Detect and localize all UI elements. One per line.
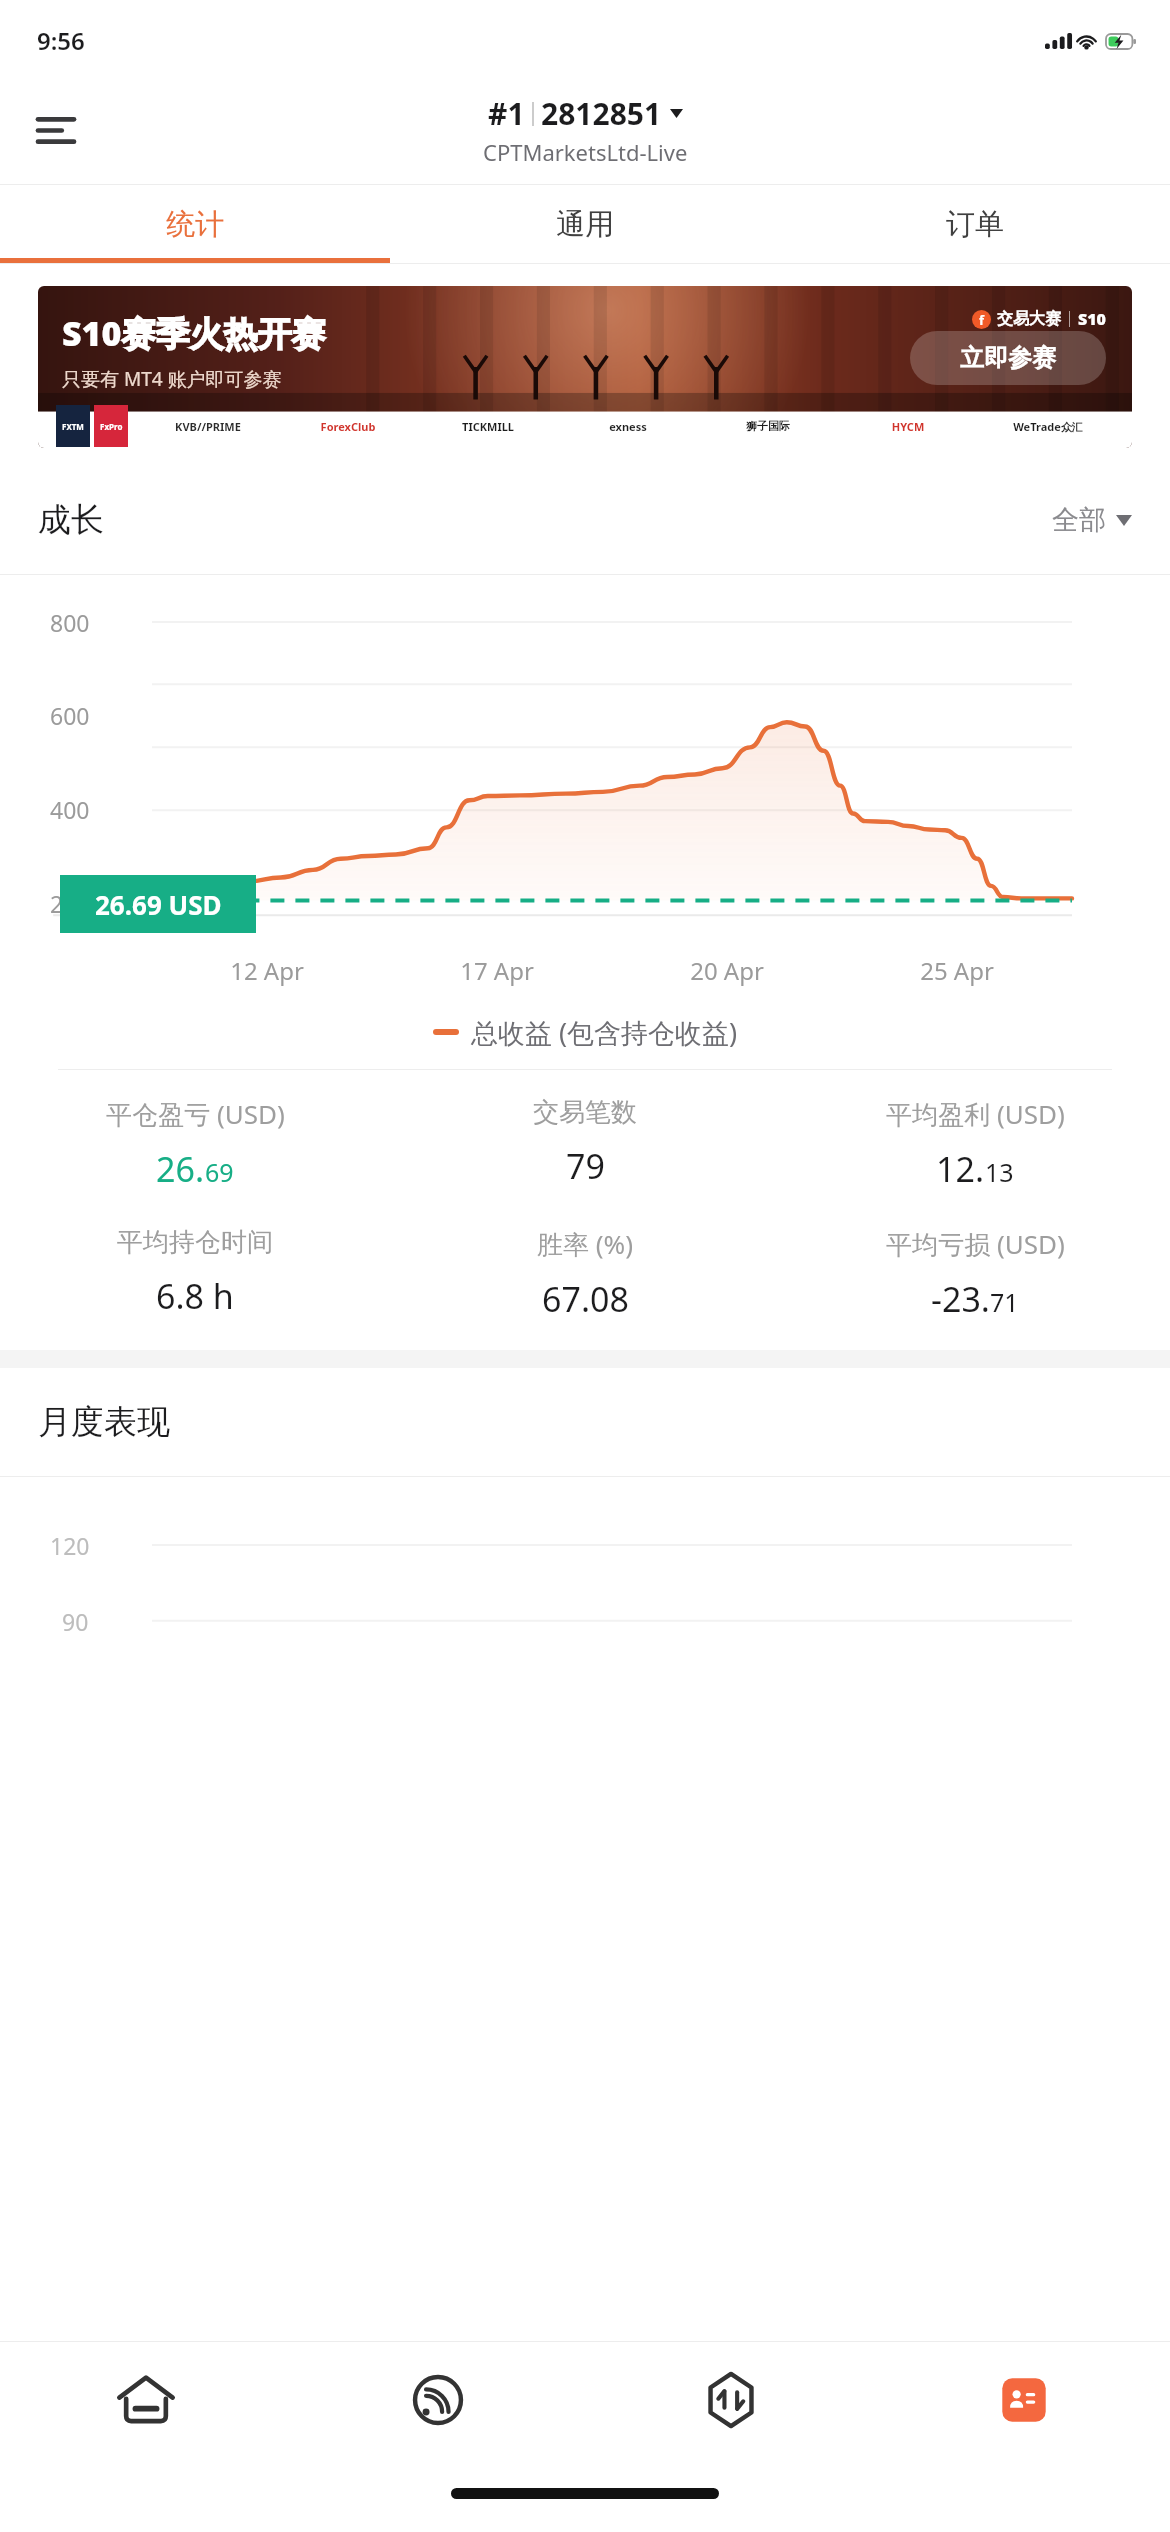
staticText: 只要有 MT4 账户即可参赛 xyxy=(62,366,282,392)
staticText: 69 xyxy=(205,1155,234,1189)
staticText: 全部 xyxy=(1052,503,1106,537)
button[interactable]: Trade xyxy=(584,2342,877,2474)
button[interactable]: 订单 xyxy=(780,185,1170,263)
staticText: 90 xyxy=(62,1606,89,1637)
staticText: 月度表现 xyxy=(38,1401,170,1443)
button[interactable]: 平均盈利 (USD) xyxy=(780,1096,1170,1192)
staticText: 13 xyxy=(985,1155,1014,1189)
staticText: 通用 xyxy=(556,206,614,243)
staticText: ForexClub xyxy=(278,419,418,434)
staticText: 71 xyxy=(990,1285,1019,1319)
staticText: 平均盈利 (USD) xyxy=(886,1096,1065,1132)
button[interactable]: S10赛季火热开赛 xyxy=(38,286,1132,448)
staticText: FxPro xyxy=(100,421,123,432)
staticText: CPTMarketsLtd-Live xyxy=(483,137,688,167)
staticText: HYCM xyxy=(838,419,978,434)
staticText: 20 Apr xyxy=(612,954,842,987)
button[interactable]: 立即参赛 xyxy=(910,331,1106,385)
staticText: 600 xyxy=(50,700,90,731)
staticText: 79 xyxy=(566,1143,605,1189)
staticText: f xyxy=(979,311,985,329)
staticText: 25 Apr xyxy=(842,954,1072,987)
staticText: 狮子国际 xyxy=(698,419,838,433)
staticText: 67.08 xyxy=(542,1276,629,1322)
staticText: 交易大赛 xyxy=(997,309,1061,329)
staticText: exness xyxy=(558,419,698,434)
staticText: 总收益 (包含持仓收益) xyxy=(471,1014,738,1051)
staticText: #1 xyxy=(488,93,525,134)
staticText: 成长 xyxy=(38,499,104,541)
button[interactable]: 平均持仓时间 xyxy=(0,1226,390,1319)
button[interactable]: 交易笔数 xyxy=(390,1096,780,1189)
button[interactable]: Signals xyxy=(292,2342,584,2474)
staticText: 2812851 xyxy=(541,93,662,134)
staticText: 800 xyxy=(50,607,90,638)
staticText: 平仓盈亏 (USD) xyxy=(106,1096,285,1132)
button[interactable]: 胜率 (%) xyxy=(390,1226,780,1322)
staticText: 平均持仓时间 xyxy=(117,1226,273,1259)
staticText: 120 xyxy=(50,1530,90,1561)
staticText: 平均亏损 (USD) xyxy=(886,1226,1065,1262)
button[interactable]: 平仓盈亏 (USD) xyxy=(0,1096,390,1192)
staticText: 26.69 USD xyxy=(95,887,222,922)
button[interactable]: #1 xyxy=(483,93,688,167)
button[interactable]: Home xyxy=(0,2342,292,2474)
staticText: FXTM xyxy=(62,421,84,432)
staticText: KVB//PRIME xyxy=(138,419,278,434)
staticText: 17 Apr xyxy=(382,954,612,987)
staticText: S10 xyxy=(1078,308,1106,330)
button[interactable]: 通用 xyxy=(390,185,780,263)
staticText: 交易笔数 xyxy=(533,1096,637,1129)
button[interactable]: 全部 xyxy=(1052,503,1132,537)
staticText: 400 xyxy=(50,794,90,825)
staticText: TICKMILL xyxy=(418,419,558,434)
staticText: 统计 xyxy=(166,206,224,243)
staticText: 200 xyxy=(50,888,90,919)
button[interactable]: 统计 xyxy=(0,185,390,263)
staticText: -23. xyxy=(931,1276,990,1322)
staticText: 订单 xyxy=(946,206,1004,243)
button[interactable]: Profile xyxy=(877,2342,1170,2474)
staticText: 12. xyxy=(936,1146,985,1192)
staticText: 6.8 h xyxy=(156,1273,234,1319)
staticText: 9:56 xyxy=(37,24,85,57)
staticText: 26. xyxy=(156,1146,205,1192)
staticText: 胜率 (%) xyxy=(537,1226,633,1262)
staticText: 立即参赛 xyxy=(960,343,1056,373)
button[interactable]: 平均亏损 (USD) xyxy=(780,1226,1170,1322)
staticText: S10赛季火热开赛 xyxy=(62,310,326,356)
staticText: 12 Apr xyxy=(152,954,382,987)
staticText: WeTrade众汇 xyxy=(978,419,1118,434)
button[interactable]: Menu xyxy=(28,102,84,158)
